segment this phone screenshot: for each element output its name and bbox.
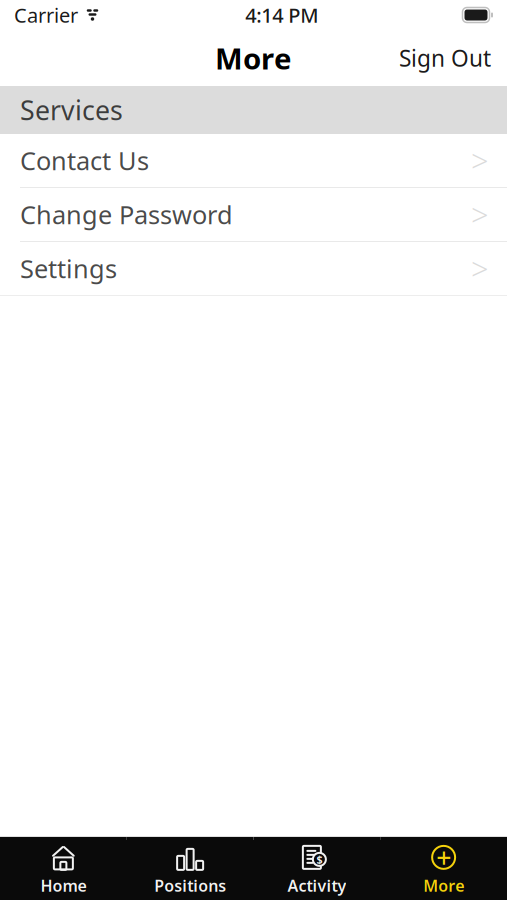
staticText: Settings [20, 252, 117, 285]
staticText: Carrier [14, 2, 78, 28]
button[interactable]: + [380, 837, 507, 900]
button[interactable]: $ [253, 837, 380, 900]
staticText: > [471, 194, 489, 235]
staticText: Sign Out [399, 43, 491, 73]
staticText: + [436, 840, 451, 875]
staticText: > [471, 248, 489, 289]
staticText: Change Password [20, 198, 233, 231]
button[interactable]: Sign Out [389, 31, 501, 85]
staticText: Services [20, 92, 123, 128]
button[interactable]: Change Password [0, 188, 507, 241]
button[interactable]: Positions [127, 837, 254, 900]
staticText: Contact Us [20, 144, 149, 177]
staticText: $ [316, 852, 322, 866]
button[interactable]: Home [0, 837, 127, 900]
staticText: Activity [287, 875, 346, 896]
button[interactable]: Contact Us [0, 134, 507, 187]
staticText: More [423, 875, 464, 896]
staticText: More [215, 38, 292, 77]
staticText: 4:14 PM [245, 2, 318, 28]
staticText: > [471, 140, 489, 181]
staticText: Home [40, 875, 86, 896]
staticText: Positions [154, 875, 226, 896]
button[interactable]: Settings [0, 242, 507, 295]
